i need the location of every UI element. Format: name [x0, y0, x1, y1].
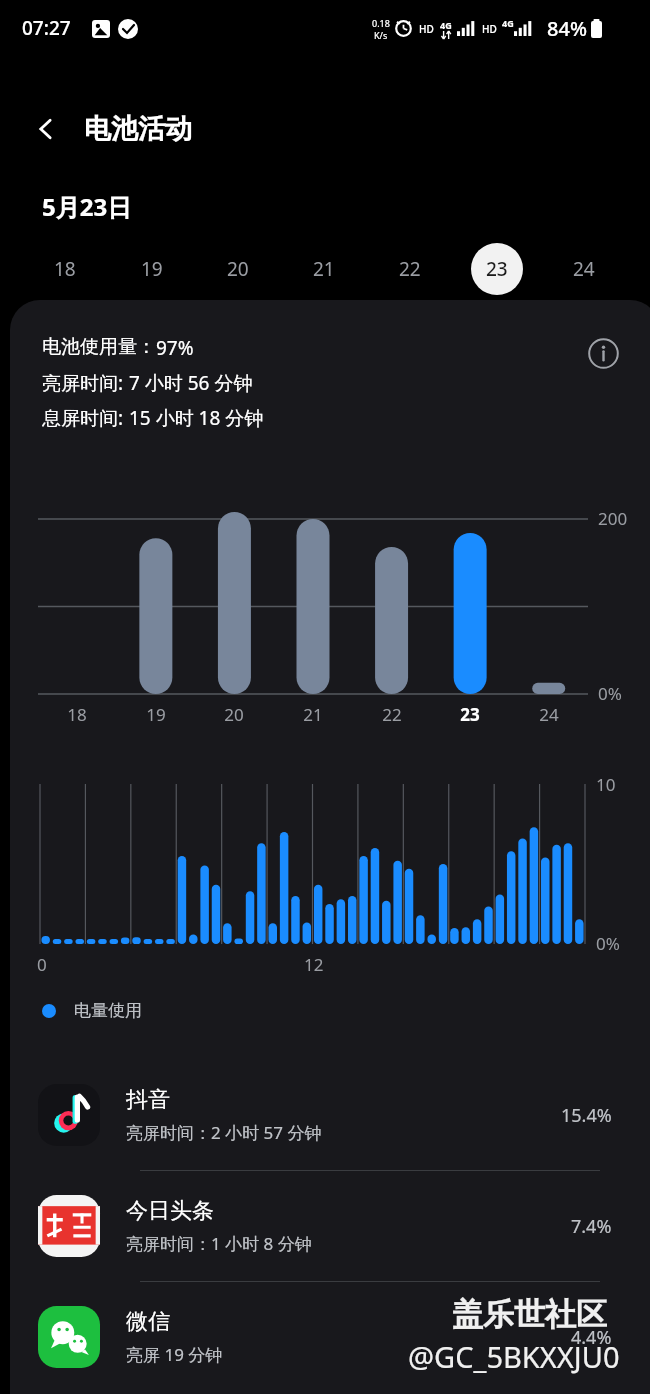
staticText: 今日头条: [126, 1197, 214, 1225]
button[interactable]: 今日头条: [10, 1171, 650, 1282]
staticText: 21: [313, 256, 335, 282]
staticText: 97%: [156, 335, 194, 361]
staticText: 5月23日: [42, 190, 132, 223]
staticText: 亮屏时间:: [42, 370, 129, 396]
staticText: 19: [141, 256, 163, 282]
staticText: 15.4%: [561, 1103, 612, 1128]
staticText: 息屏时间:: [42, 405, 129, 431]
staticText: 18: [55, 703, 99, 726]
staticText: 亮屏时间：2 小时 57 分钟: [126, 1121, 322, 1144]
staticText: 电池使用量：: [42, 335, 156, 359]
staticText: 微信: [126, 1308, 170, 1336]
staticText: 4G: [440, 19, 452, 31]
staticText: 盖乐世社区: [452, 1295, 607, 1334]
staticText: @GC_5BKXXJU0: [408, 1337, 620, 1376]
button[interactable]: 21: [298, 243, 350, 295]
button[interactable]: 20: [212, 243, 264, 295]
button[interactable]: 抖音: [10, 1060, 650, 1171]
staticText: 07:27: [22, 15, 71, 41]
button[interactable]: 微信: [10, 1282, 650, 1392]
staticText: 200: [598, 507, 628, 530]
staticText: HD: [419, 22, 434, 36]
staticText: 21: [291, 703, 335, 726]
staticText: 0%: [598, 682, 622, 705]
staticText: 7 小时 56 分钟: [129, 370, 253, 396]
staticText: 24: [527, 703, 571, 726]
staticText: 22: [399, 256, 421, 282]
staticText: 22: [370, 703, 414, 726]
staticText: 0: [37, 953, 47, 976]
staticText: 19: [134, 703, 178, 726]
staticText: 亮屏时间：1 小时 8 分钟: [126, 1232, 312, 1255]
staticText: 7.4%: [571, 1214, 612, 1239]
staticText: 4G: [502, 17, 514, 29]
staticText: 15 小时 18 分钟: [129, 405, 264, 431]
button[interactable]: 24: [558, 243, 610, 295]
staticText: 电量使用: [74, 1000, 142, 1021]
staticText: HD: [482, 22, 497, 36]
staticText: 24: [573, 256, 595, 282]
staticText: 4.4%: [571, 1325, 612, 1350]
staticText: 抖音: [126, 1086, 170, 1114]
button[interactable]: Back: [22, 105, 70, 153]
staticText: 10: [596, 773, 616, 796]
staticText: 23: [448, 703, 492, 726]
staticText: 20: [212, 703, 256, 726]
staticText: 23: [486, 256, 508, 282]
button[interactable]: 22: [384, 243, 436, 295]
button[interactable]: 19: [126, 243, 178, 295]
staticText: 84%: [547, 15, 587, 42]
staticText: K/s: [374, 29, 388, 41]
staticText: 亮屏 19 分钟: [126, 1343, 223, 1366]
staticText: 电池活动: [84, 112, 192, 146]
button[interactable]: 18: [39, 243, 91, 295]
button[interactable]: 23: [471, 243, 523, 295]
button[interactable]: Information: [580, 330, 626, 376]
staticText: 20: [227, 256, 249, 282]
staticText: 12: [304, 953, 324, 976]
staticText: 0.18: [372, 17, 390, 29]
staticText: 0%: [596, 932, 620, 955]
staticText: 18: [54, 256, 76, 282]
